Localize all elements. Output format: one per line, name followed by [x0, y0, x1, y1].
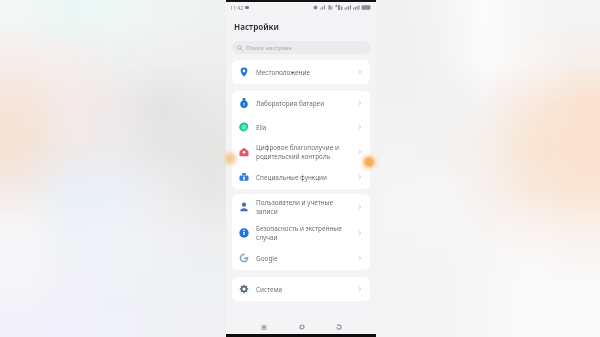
button[interactable]: Безопасность и экстренные — [232, 220, 370, 246]
button[interactable]: Поиск настроек — [232, 41, 370, 54]
staticText: Настройки — [234, 21, 279, 32]
button[interactable]: Пользователи и учетные — [232, 194, 370, 220]
staticText: Местоположение — [256, 68, 310, 77]
staticText: случаи — [256, 233, 278, 242]
button[interactable]: Home — [295, 320, 308, 333]
staticText: родительский контроль — [256, 152, 331, 161]
staticText: Лаборатория батареи — [256, 99, 325, 108]
staticText: Ella — [256, 123, 267, 132]
button[interactable]: Google — [232, 246, 370, 270]
button[interactable]: Recent apps — [257, 320, 270, 333]
button[interactable]: Система — [232, 277, 370, 301]
staticText: Специальные функции — [256, 173, 328, 182]
staticText: Поиск настроек — [246, 44, 292, 52]
button[interactable]: Лаборатория батареи — [232, 91, 370, 115]
staticText: Google — [256, 254, 278, 263]
button[interactable]: Специальные функции — [232, 165, 370, 189]
staticText: Безопасность и экстренные — [256, 224, 342, 233]
staticText: Система — [256, 285, 283, 294]
button[interactable]: Ella — [232, 115, 370, 139]
staticText: записи — [256, 207, 278, 216]
button[interactable]: Цифровое благополучие и — [232, 139, 370, 165]
button[interactable]: Местоположение — [232, 60, 370, 84]
staticText: Пользователи и учетные — [256, 198, 333, 207]
button[interactable]: Back — [332, 320, 345, 333]
staticText: Цифровое благополучие и — [256, 143, 339, 152]
staticText: 11:42 — [230, 4, 244, 11]
